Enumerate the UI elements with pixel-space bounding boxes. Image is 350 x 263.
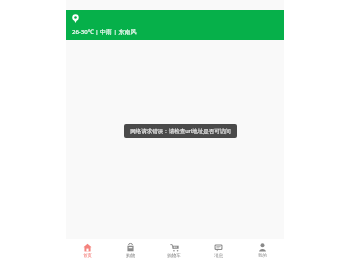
button[interactable]: 我的 <box>240 239 284 263</box>
staticText: 购物车 <box>167 253 181 259</box>
staticText: 购物 <box>126 253 135 259</box>
button[interactable]: 消息 <box>196 239 240 263</box>
button[interactable]: Location <box>72 12 79 25</box>
staticText: 消息 <box>214 253 223 259</box>
staticText: 网络请求错误：请检查url地址是否可访问 <box>130 127 231 135</box>
button[interactable]: 首页 <box>66 239 109 263</box>
staticText: 我的 <box>258 253 267 259</box>
staticText: 26-30℃ | 中雨 | 东南风 <box>72 28 137 36</box>
button[interactable]: 购物 <box>109 239 152 263</box>
staticText: 首页 <box>83 253 92 259</box>
button[interactable]: 购物车 <box>152 239 196 263</box>
